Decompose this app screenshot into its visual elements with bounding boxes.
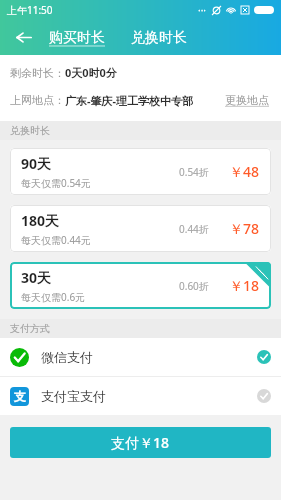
staticText: 支付方式 xyxy=(10,322,50,335)
staticText: 兑换时长 xyxy=(10,124,50,137)
staticText: 0.60折 xyxy=(179,279,209,293)
button[interactable]: 更换地点 xyxy=(223,90,271,110)
staticText: 0.44折 xyxy=(179,222,209,236)
staticText: ··· xyxy=(198,3,207,17)
staticText: 上午11:50 xyxy=(7,3,53,17)
staticText: 微信支付 xyxy=(41,349,93,365)
staticText: 每天仅需0.44元 xyxy=(21,233,91,247)
staticText: 30天 xyxy=(21,268,52,287)
staticText: ￥48 xyxy=(229,162,260,181)
button[interactable]: 30天 xyxy=(10,262,271,309)
staticText: 90天 xyxy=(21,154,52,173)
button[interactable]: 180天 xyxy=(10,205,271,252)
staticText: 支 xyxy=(14,389,26,404)
staticText: ￥78 xyxy=(229,219,260,238)
staticText: 剩余时长： xyxy=(10,66,65,80)
staticText: 上网地点： xyxy=(10,93,65,107)
button[interactable]: 支 xyxy=(0,377,281,415)
staticText: 支付宝支付 xyxy=(41,388,106,404)
staticText: 180天 xyxy=(21,211,60,230)
staticText: 兑换时长 xyxy=(131,29,187,47)
button[interactable]: 支付￥18 xyxy=(10,427,271,458)
staticText: 支付￥18 xyxy=(111,433,170,452)
staticText: 每天仅需0.54元 xyxy=(21,176,91,190)
staticText: 0.54折 xyxy=(179,165,209,179)
button[interactable]: 兑换时长 xyxy=(128,23,190,53)
staticText: 0天0时0分 xyxy=(65,65,117,80)
button[interactable]: 购买时长 xyxy=(46,23,108,53)
button[interactable]: 微信支付 xyxy=(0,338,281,376)
staticText: 广东-肇庆-理工学校中专部 xyxy=(65,93,194,108)
staticText: 更换地点 xyxy=(225,93,269,107)
staticText: ￥18 xyxy=(229,276,260,295)
button[interactable]: Back xyxy=(0,20,46,55)
button[interactable]: 90天 xyxy=(10,148,271,195)
staticText: 购买时长 xyxy=(49,29,105,47)
staticText: 每天仅需0.6元 xyxy=(21,290,86,304)
